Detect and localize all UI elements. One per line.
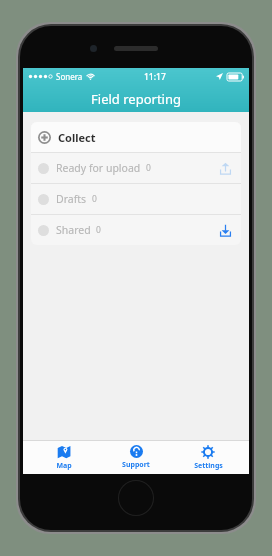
- staticText: 0: [92, 193, 97, 205]
- button[interactable]: Ready for upload: [31, 153, 241, 183]
- button[interactable]: Map: [33, 441, 95, 474]
- button[interactable]: Settings: [177, 441, 239, 474]
- staticText: 0: [96, 224, 101, 236]
- staticText: Collect: [58, 130, 96, 145]
- staticText: Drafts: [56, 192, 87, 206]
- button[interactable]: Support: [105, 441, 167, 474]
- staticText: Support: [122, 460, 150, 470]
- button[interactable]: Download: [216, 221, 234, 239]
- staticText: 0: [146, 162, 151, 174]
- staticText: Field reporting: [91, 90, 181, 108]
- staticText: Ready for upload: [56, 161, 141, 175]
- button[interactable]: Shared: [31, 215, 241, 245]
- button[interactable]: Upload: [216, 159, 234, 177]
- staticText: Map: [56, 461, 72, 471]
- button[interactable]: Collect: [31, 122, 241, 152]
- button[interactable]: Drafts: [31, 184, 241, 214]
- staticText: Sonera: [56, 71, 83, 82]
- staticText: Settings: [194, 461, 223, 471]
- staticText: 11:17: [144, 71, 166, 83]
- staticText: Shared: [56, 223, 91, 237]
